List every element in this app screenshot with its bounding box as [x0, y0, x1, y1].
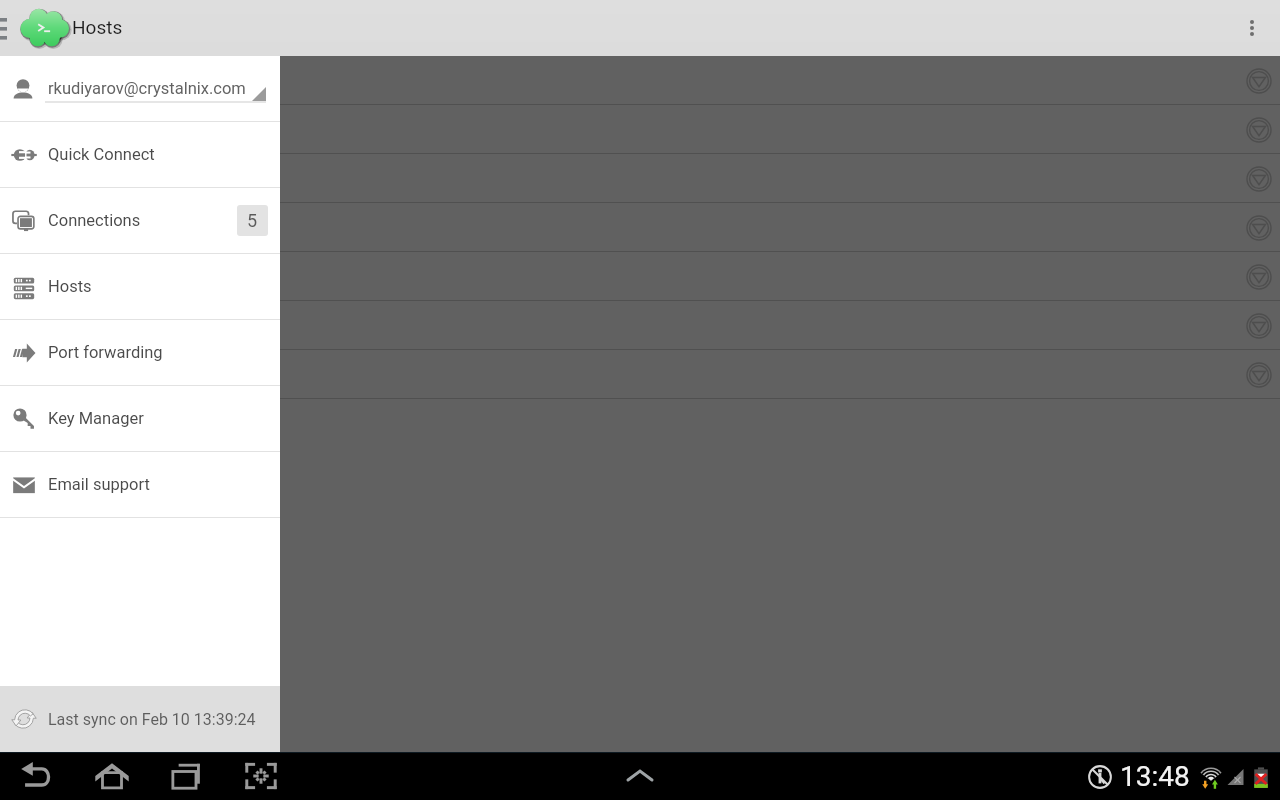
button[interactable]: Expand — [0, 154, 1280, 203]
button[interactable]: Expand — [1246, 166, 1272, 192]
button[interactable]: rkudiyarov@crystalnix.com — [0, 56, 280, 121]
staticText: Key Manager — [48, 409, 144, 428]
button[interactable]: Quick Connect — [0, 122, 280, 187]
button[interactable]: Expand — [1246, 117, 1272, 143]
button[interactable]: Expand — [0, 203, 1280, 252]
staticText: Port forwarding — [48, 343, 163, 362]
button[interactable]: Last sync on Feb 10 13:39:24 — [0, 686, 280, 752]
button[interactable]: Expand — [0, 301, 1280, 350]
button[interactable]: Expand — [0, 350, 1280, 399]
button[interactable]: Expand — [1246, 68, 1272, 94]
button[interactable]: Expand — [1246, 264, 1272, 290]
staticText: 13:48 — [1120, 760, 1190, 793]
staticText: Hosts — [48, 277, 92, 296]
button[interactable]: Connections — [0, 188, 280, 253]
staticText: rkudiyarov@crystalnix.com — [48, 79, 246, 98]
button[interactable]: Home — [86, 752, 138, 800]
button[interactable]: Expand — [0, 105, 1280, 154]
button[interactable]: Show navigation — [616, 752, 664, 800]
staticText: Email support — [48, 475, 150, 494]
button[interactable]: Port forwarding — [0, 320, 280, 385]
staticText: Last sync on Feb 10 13:39:24 — [48, 710, 256, 729]
button[interactable]: Expand — [1246, 362, 1272, 388]
staticText: Connections — [48, 211, 141, 230]
button[interactable]: More options — [1224, 0, 1280, 56]
staticText: Quick Connect — [48, 145, 155, 164]
button[interactable]: Open navigation drawer — [0, 0, 18, 56]
button[interactable]: Expand — [235, 752, 287, 800]
button[interactable]: Recents — [161, 752, 213, 800]
button[interactable]: Key Manager — [0, 386, 280, 451]
button[interactable]: Email support — [0, 452, 280, 517]
button[interactable]: Expand — [1246, 215, 1272, 241]
staticText: 5 — [247, 210, 258, 231]
staticText: Hosts — [72, 16, 123, 38]
button[interactable]: Hosts — [0, 254, 280, 319]
button[interactable]: Expand — [0, 252, 1280, 301]
button[interactable]: Back — [10, 752, 62, 800]
button[interactable]: Expand — [0, 56, 1280, 105]
button[interactable]: Expand — [1246, 313, 1272, 339]
